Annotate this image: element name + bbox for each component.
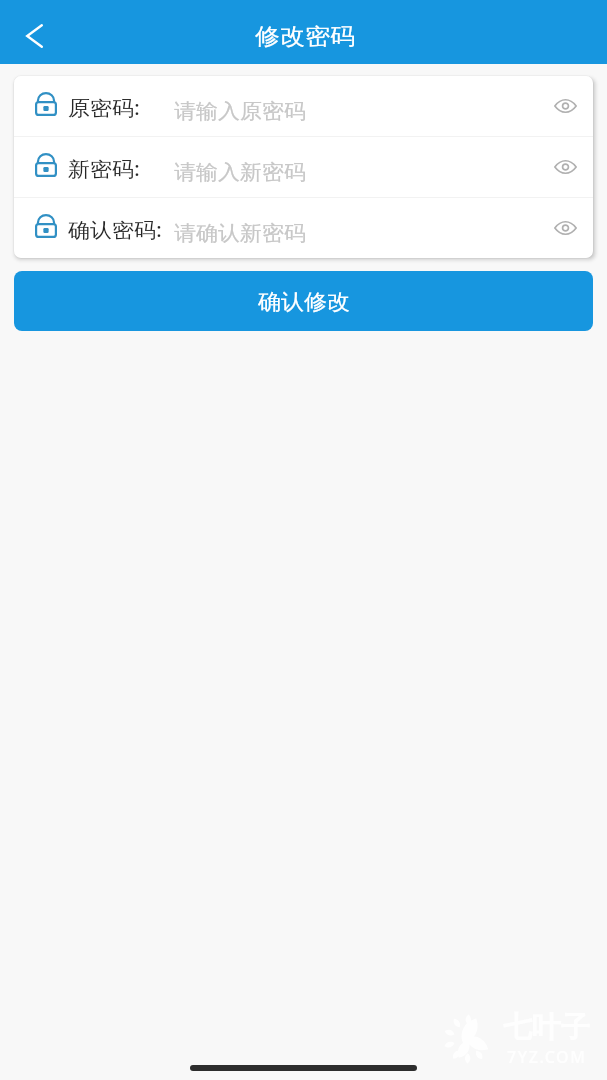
staticText: 原密码: [68,93,140,120]
staticText: 确认修改 [258,289,350,316]
staticText: 请输入原密码 [174,99,306,125]
staticText: 修改密码 [255,22,355,50]
button[interactable]: 确认修改 [14,271,593,331]
button[interactable]: 原密码: [14,76,593,136]
button[interactable]: 新密码: [14,137,593,197]
button[interactable]: Show password [543,84,587,128]
button[interactable]: 确认密码: [14,198,593,258]
button[interactable]: Back [8,8,56,56]
staticText: 确认密码: [68,215,162,242]
staticText: 新密码: [68,154,140,181]
button[interactable]: Show password [543,206,587,250]
button[interactable]: Show password [543,145,587,189]
staticText: 请确认新密码 [174,221,306,247]
staticText: 请输入新密码 [174,160,306,186]
